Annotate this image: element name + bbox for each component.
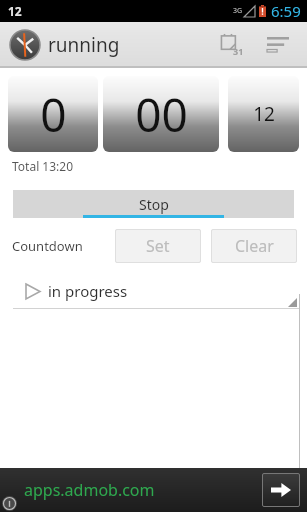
button[interactable]: List xyxy=(261,22,295,68)
staticText: 31 xyxy=(233,45,244,57)
staticText: apps.admob.com xyxy=(24,479,155,501)
button[interactable]: Set xyxy=(115,229,201,263)
staticText: Set xyxy=(146,235,170,257)
button[interactable]: Stop xyxy=(13,190,294,218)
staticText: 3G xyxy=(233,6,243,16)
staticText: 12 xyxy=(8,3,22,19)
staticText: 6:59 xyxy=(271,1,301,21)
button[interactable]: 0 xyxy=(8,76,98,152)
staticText: Total 13:20 xyxy=(12,158,74,174)
staticText: running xyxy=(48,32,120,58)
button[interactable]: 12 xyxy=(228,76,299,152)
staticText: Stop xyxy=(139,195,169,214)
staticText: Clear xyxy=(235,235,274,257)
staticText: Countdown xyxy=(12,237,83,255)
button[interactable]: Open ad xyxy=(262,473,300,507)
button[interactable]: Clear xyxy=(211,229,297,263)
staticText: 12 xyxy=(253,101,275,127)
button[interactable]: Calendar xyxy=(213,22,251,68)
button[interactable]: in progress xyxy=(13,273,299,309)
staticText: 0 xyxy=(40,83,67,146)
button[interactable]: 00 xyxy=(103,76,219,152)
button[interactable]: apps.admob.com xyxy=(0,468,307,512)
staticText: 00 xyxy=(135,83,188,146)
staticText: in progress xyxy=(48,281,128,301)
